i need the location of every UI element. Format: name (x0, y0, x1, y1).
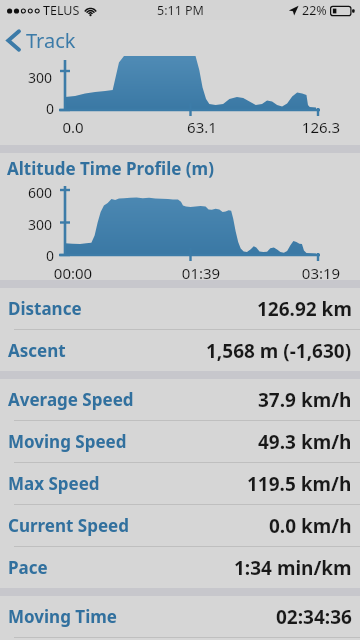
staticText: Track (26, 27, 76, 54)
staticText: 02:34:36 (276, 604, 352, 630)
staticText: 00:00 (40, 263, 106, 280)
staticText: 1:34 min/km (234, 555, 352, 581)
staticText: 300 (28, 68, 53, 87)
staticText: 01:39 (168, 263, 234, 280)
staticText: 300 (28, 215, 53, 234)
staticText: 5:11 PM (157, 2, 204, 19)
button[interactable]: Distance (0, 288, 360, 329)
button[interactable]: Altitude time profile chart (0, 153, 360, 280)
staticText: 1,568 m (-1,630) (206, 338, 352, 364)
staticText: 37.9 km/h (258, 387, 352, 413)
button[interactable]: Track (0, 23, 86, 58)
staticText: 600 (28, 183, 53, 202)
button[interactable]: Moving Speed (0, 421, 360, 462)
button[interactable]: Pace (0, 547, 360, 588)
staticText: 22% (302, 2, 327, 19)
staticText: 49.3 km/h (258, 429, 352, 455)
staticText: 63.1 (172, 117, 232, 137)
staticText: Ascent (8, 339, 66, 362)
staticText: 03:19 (288, 263, 354, 280)
button[interactable]: Current Speed (0, 505, 360, 546)
button[interactable]: Moving Time (0, 596, 360, 637)
staticText: 0.0 km/h (269, 513, 352, 539)
staticText: 126.3 (288, 117, 354, 137)
staticText: 0 (46, 99, 55, 118)
staticText: Moving Speed (8, 430, 127, 453)
staticText: Moving Time (8, 605, 117, 628)
button[interactable]: Average Speed (0, 379, 360, 420)
button[interactable]: Ascent (0, 330, 360, 371)
staticText: 126.92 km (257, 296, 352, 322)
staticText: 119.5 km/h (247, 471, 352, 497)
staticText: Current Speed (8, 514, 129, 537)
staticText: Average Speed (8, 388, 134, 411)
staticText: Max Speed (8, 472, 100, 495)
button[interactable]: Speed distance profile chart (0, 60, 360, 145)
staticText: Pace (8, 556, 48, 579)
staticText: TELUS (43, 2, 80, 19)
staticText: 0.0 (46, 117, 100, 137)
staticText: Distance (8, 297, 82, 320)
staticText: Altitude Time Profile (m) (7, 157, 214, 180)
button[interactable]: Max Speed (0, 463, 360, 504)
staticText: 0 (46, 246, 55, 265)
